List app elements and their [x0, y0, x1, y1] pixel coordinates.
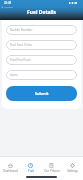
staticText: Dashboard [3, 169, 18, 173]
staticText: Total Fuel Cost [10, 58, 31, 62]
button[interactable]: Litres [6, 70, 77, 80]
staticText: Fuel [28, 169, 34, 173]
staticText: Settings [67, 169, 78, 173]
button[interactable]: Settings [62, 163, 83, 174]
button[interactable]: Submit [6, 86, 77, 101]
button[interactable]: Vechile Number [6, 25, 77, 35]
staticText: ◀ MyFleet [1, 5, 13, 8]
button[interactable]: Our Policies [41, 163, 62, 174]
button[interactable]: Fuel [20, 163, 41, 174]
staticText: Fuel Details [27, 9, 57, 16]
staticText: Vechile Number [10, 28, 33, 32]
staticText: Submit [35, 91, 49, 96]
staticText: Litres [10, 73, 18, 77]
button[interactable]: Dashboard [0, 163, 20, 174]
other: Status icons [69, 2, 77, 4]
staticText: Fuel Cost / Litre [10, 43, 32, 47]
button[interactable]: Total Fuel Cost [6, 55, 77, 65]
button[interactable]: Fuel Cost / Litre [6, 40, 77, 50]
staticText: Our Policies [44, 169, 60, 173]
staticText: 23:43 [4, 1, 12, 5]
